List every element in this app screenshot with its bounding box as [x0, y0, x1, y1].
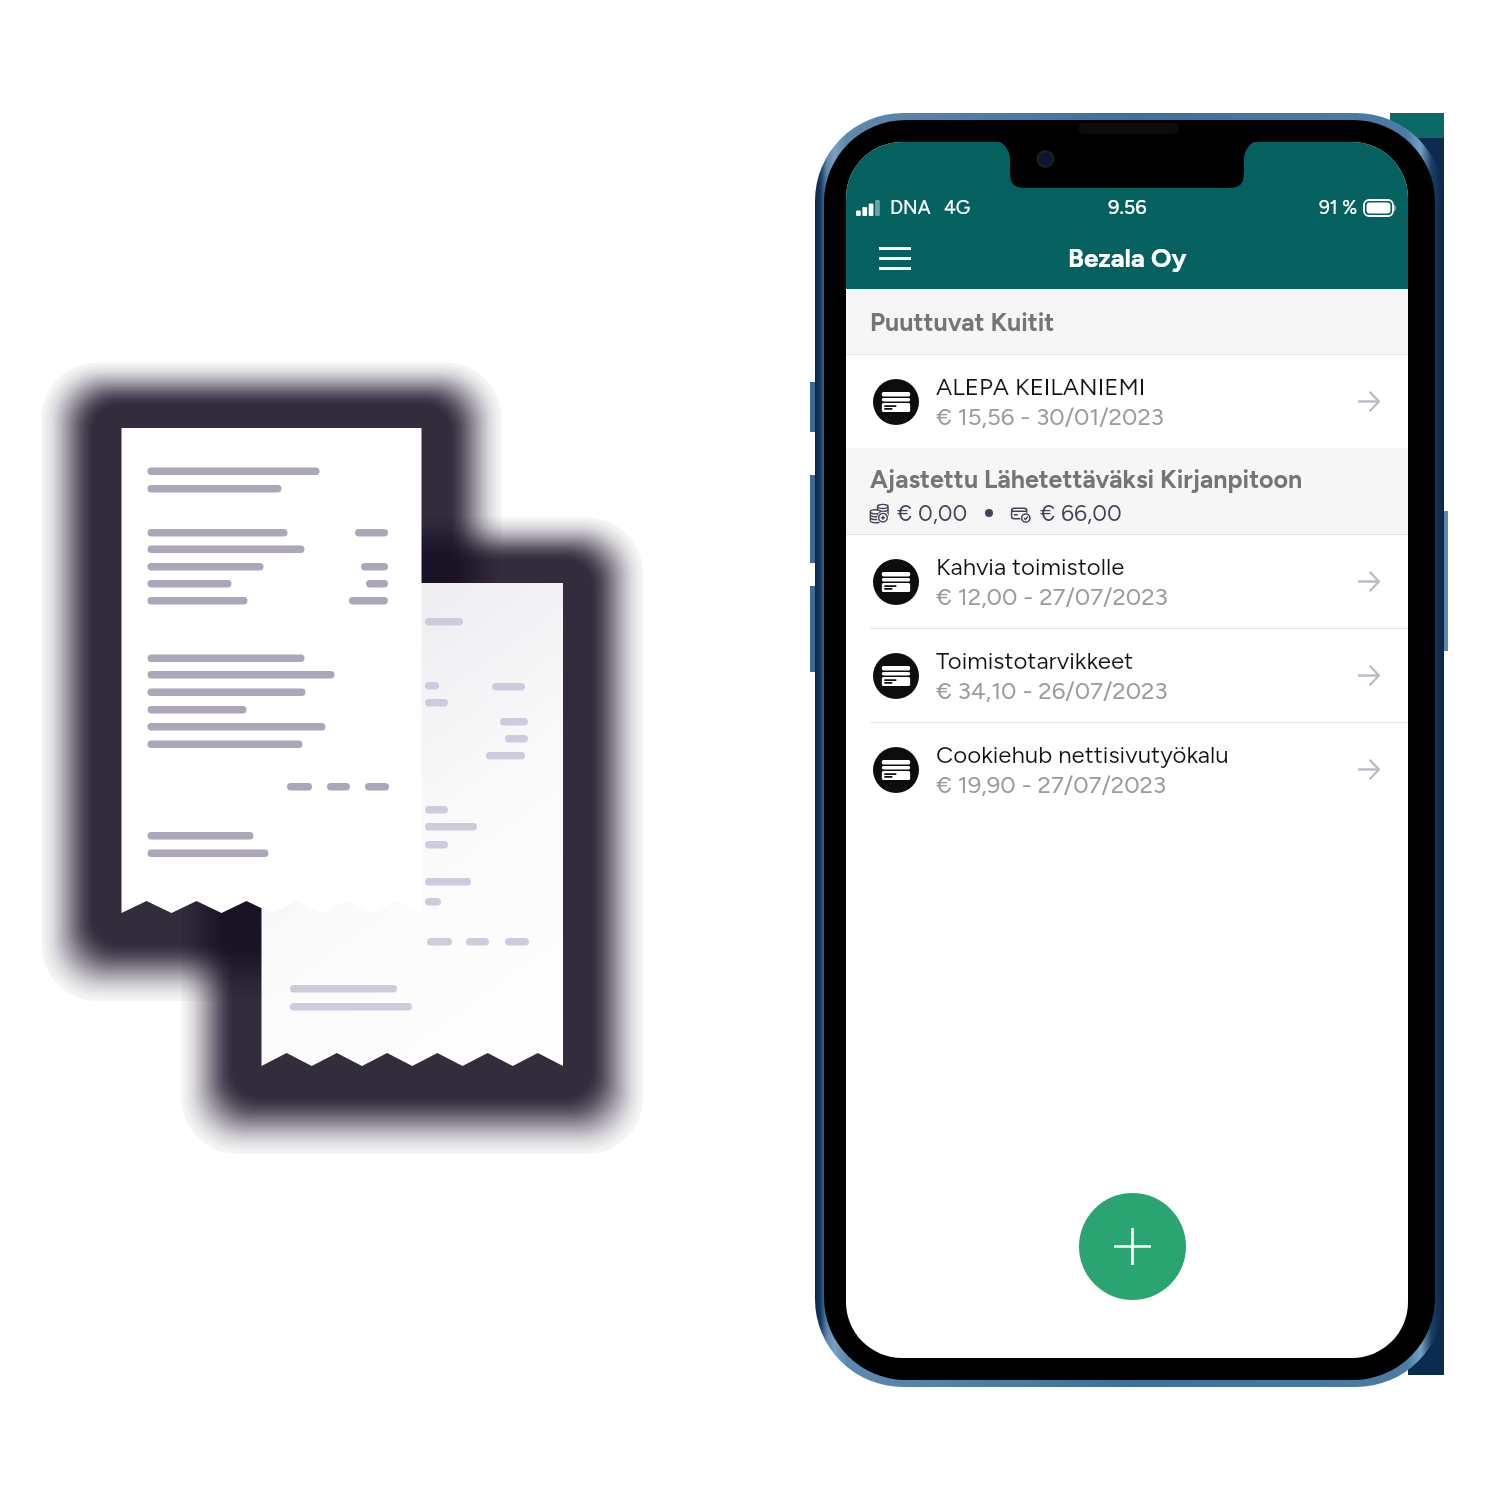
- staticText: € 19,90 - 27/07/2023: [936, 770, 1167, 799]
- button[interactable]: Open menu: [874, 236, 916, 280]
- staticText: 4G: [944, 196, 971, 219]
- staticText: € 12,00 - 27/07/2023: [936, 582, 1168, 611]
- button[interactable]: Add receipt: [1079, 1193, 1186, 1300]
- staticText: € 66,00: [1040, 499, 1122, 527]
- button[interactable]: Cookiehub nettisivutyökalu: [846, 723, 1408, 816]
- staticText: Cookiehub nettisivutyökalu: [936, 740, 1229, 769]
- staticText: Bezala Oy: [1068, 242, 1187, 273]
- button[interactable]: Kahvia toimistolle: [846, 535, 1408, 628]
- button[interactable]: ALEPA KEILANIEMI: [846, 355, 1408, 448]
- staticText: ALEPA KEILANIEMI: [936, 372, 1146, 401]
- staticText: Toimistotarvikkeet: [936, 646, 1134, 675]
- staticText: 91 %: [1319, 196, 1358, 219]
- staticText: € 34,10 - 26/07/2023: [936, 676, 1168, 705]
- button[interactable]: Toimistotarvikkeet: [846, 629, 1408, 722]
- staticText: 9.56: [1108, 195, 1147, 219]
- staticText: DNA: [890, 196, 931, 219]
- staticText: € 15,56 - 30/01/2023: [936, 402, 1164, 431]
- staticText: Ajastettu Lähetettäväksi Kirjanpitoon: [870, 464, 1303, 494]
- staticText: € 0,00: [897, 499, 968, 527]
- staticText: Kahvia toimistolle: [936, 552, 1125, 581]
- staticText: Puuttuvat Kuitit: [870, 307, 1055, 337]
